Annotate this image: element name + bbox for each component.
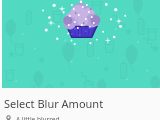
button[interactable]: Cupcake image	[2, 0, 160, 88]
staticText: A little blurred	[16, 115, 60, 120]
staticText: Select Blur Amount	[4, 96, 104, 111]
button[interactable]: A little blurred	[4, 115, 160, 120]
